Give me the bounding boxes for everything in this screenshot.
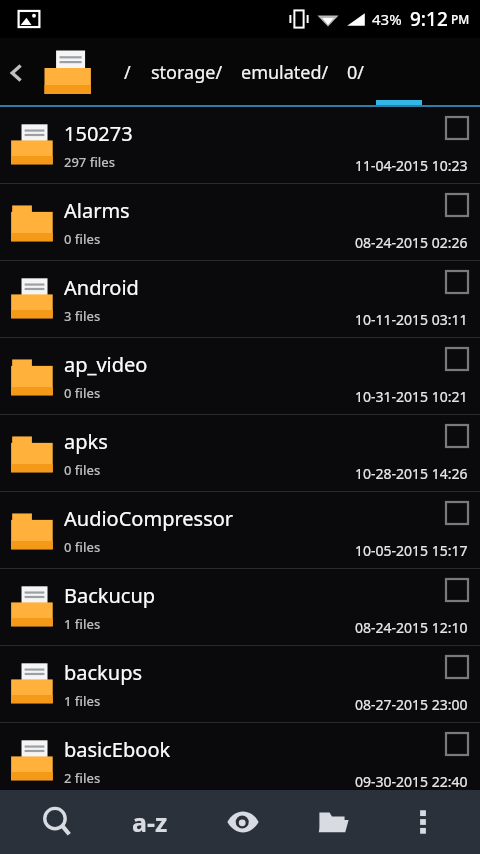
button[interactable]: Open folder bbox=[300, 790, 366, 854]
button[interactable]: Select Alarms bbox=[446, 194, 468, 216]
staticText: 0 files bbox=[64, 230, 101, 248]
staticText: 9:12 bbox=[410, 6, 448, 32]
staticText: ap_video bbox=[64, 351, 148, 378]
button[interactable]: Select apks bbox=[446, 425, 468, 447]
button[interactable]: backups bbox=[0, 646, 480, 723]
staticText: 3 files bbox=[64, 307, 101, 325]
button[interactable]: AudioCompressor bbox=[0, 492, 480, 569]
button[interactable]: Select ap_video bbox=[446, 348, 468, 370]
staticText: PM bbox=[451, 11, 470, 27]
button[interactable]: Back bbox=[0, 38, 34, 107]
staticText: a-z bbox=[132, 805, 168, 839]
button[interactable]: Select 150273 bbox=[446, 117, 468, 139]
button[interactable]: 150273 bbox=[0, 107, 480, 184]
button[interactable]: Current folder bbox=[34, 38, 106, 107]
staticText: 10-28-2015 14:26 bbox=[355, 464, 468, 483]
staticText: 09-30-2015 22:40 bbox=[355, 772, 468, 791]
button[interactable]: emulated/ bbox=[237, 50, 333, 95]
staticText: 0/ bbox=[347, 60, 364, 85]
button[interactable]: apks bbox=[0, 415, 480, 492]
staticText: 11-04-2015 10:23 bbox=[355, 156, 468, 175]
staticText: 1 files bbox=[64, 692, 101, 710]
staticText: storage/ bbox=[151, 60, 223, 85]
staticText: Alarms bbox=[64, 197, 130, 224]
staticText: 2 files bbox=[64, 769, 101, 787]
button[interactable]: ap_video bbox=[0, 338, 480, 415]
button[interactable]: 0/ bbox=[343, 50, 368, 95]
staticText: 150273 bbox=[64, 120, 133, 147]
button[interactable]: Toggle hidden files bbox=[210, 790, 276, 854]
staticText: 08-24-2015 12:10 bbox=[355, 618, 468, 637]
button[interactable]: Select AudioCompressor bbox=[446, 502, 468, 524]
staticText: 10-05-2015 15:17 bbox=[355, 541, 468, 560]
button[interactable]: More options bbox=[390, 790, 456, 854]
button[interactable]: / bbox=[116, 50, 139, 95]
button[interactable]: Select Backucup bbox=[446, 579, 468, 601]
staticText: Backucup bbox=[64, 582, 156, 609]
staticText: AudioCompressor bbox=[64, 505, 234, 532]
staticText: 43% bbox=[372, 9, 402, 29]
button[interactable]: Search bbox=[24, 790, 90, 854]
button[interactable]: storage/ bbox=[147, 50, 227, 95]
staticText: apks bbox=[64, 428, 108, 455]
staticText: 0 files bbox=[64, 384, 101, 402]
staticText: 1 files bbox=[64, 615, 101, 633]
button[interactable]: Select Android bbox=[446, 271, 468, 293]
button[interactable]: basicEbook bbox=[0, 723, 480, 800]
staticText: basicEbook bbox=[64, 736, 171, 763]
staticText: Android bbox=[64, 274, 139, 301]
button[interactable]: Backucup bbox=[0, 569, 480, 646]
button[interactable]: Android bbox=[0, 261, 480, 338]
staticText: / bbox=[124, 60, 131, 85]
staticText: 10-11-2015 03:11 bbox=[355, 310, 468, 329]
button[interactable]: Alarms bbox=[0, 184, 480, 261]
staticText: emulated/ bbox=[241, 60, 329, 85]
staticText: 08-27-2015 23:00 bbox=[355, 695, 468, 714]
staticText: backups bbox=[64, 659, 143, 686]
staticText: 10-31-2015 10:21 bbox=[355, 387, 468, 406]
button[interactable]: a-z bbox=[114, 790, 186, 854]
staticText: 08-24-2015 02:26 bbox=[355, 233, 468, 252]
button[interactable]: Select backups bbox=[446, 656, 468, 678]
button[interactable]: Select basicEbook bbox=[446, 733, 468, 755]
staticText: 0 files bbox=[64, 538, 101, 556]
staticText: 297 files bbox=[64, 153, 116, 171]
staticText: 0 files bbox=[64, 461, 101, 479]
